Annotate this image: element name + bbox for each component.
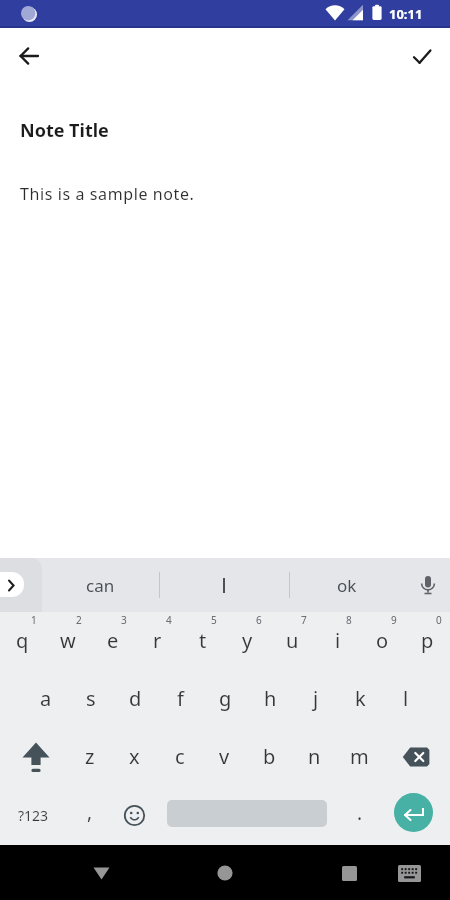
button[interactable]: m xyxy=(337,728,382,786)
button[interactable]: y xyxy=(225,612,270,670)
button[interactable] xyxy=(0,572,24,597)
staticText: a xyxy=(40,685,52,712)
staticText: j xyxy=(313,685,319,712)
staticText: 10:11 xyxy=(389,5,423,23)
staticText: This is a sample note. xyxy=(20,183,195,205)
staticText: 4 xyxy=(166,613,172,627)
staticText: 3 xyxy=(121,613,127,627)
button[interactable]: z xyxy=(67,728,112,786)
staticText: 7 xyxy=(301,613,307,627)
button[interactable] xyxy=(202,850,248,896)
button[interactable]: a xyxy=(23,670,68,728)
staticText: f xyxy=(177,685,184,712)
button[interactable]: j xyxy=(293,670,338,728)
staticText: r xyxy=(153,627,162,654)
staticText: x xyxy=(129,743,140,770)
staticText: q xyxy=(16,627,29,654)
button[interactable] xyxy=(112,786,157,845)
staticText: e xyxy=(107,627,119,654)
staticText: , xyxy=(87,799,93,825)
button[interactable]: l xyxy=(383,670,428,728)
button[interactable] xyxy=(382,728,449,786)
button[interactable]: c xyxy=(157,728,202,786)
button[interactable]: g xyxy=(203,670,248,728)
button[interactable] xyxy=(326,850,372,896)
button[interactable] xyxy=(400,34,444,78)
staticText: g xyxy=(219,685,232,712)
button[interactable] xyxy=(386,850,432,896)
button[interactable]: o xyxy=(360,612,405,670)
staticText: 2 xyxy=(76,613,82,627)
staticText: 9 xyxy=(391,613,397,627)
button[interactable]: i xyxy=(315,612,360,670)
button[interactable]: t xyxy=(180,612,225,670)
button[interactable]: r xyxy=(135,612,180,670)
staticText: m xyxy=(350,743,369,770)
staticText: ok xyxy=(337,574,357,597)
button[interactable]: s xyxy=(68,670,113,728)
button[interactable]: k xyxy=(338,670,383,728)
staticText: z xyxy=(85,743,95,770)
button[interactable] xyxy=(405,558,450,612)
staticText: t xyxy=(199,627,207,654)
button[interactable]: q xyxy=(0,612,45,670)
staticText: s xyxy=(86,685,96,712)
button[interactable]: , xyxy=(67,786,112,845)
button[interactable]: ?123 xyxy=(0,786,67,845)
button[interactable] xyxy=(186,558,262,612)
button[interactable]: b xyxy=(247,728,292,786)
button[interactable] xyxy=(0,728,67,786)
staticText: Note Title xyxy=(20,118,109,143)
staticText: h xyxy=(264,685,277,712)
staticText: 8 xyxy=(346,613,352,627)
button[interactable]: d xyxy=(113,670,158,728)
staticText: 5 xyxy=(211,613,217,627)
button[interactable] xyxy=(7,34,51,78)
staticText: w xyxy=(60,627,76,654)
button[interactable] xyxy=(382,786,450,845)
staticText: o xyxy=(376,627,389,654)
staticText: d xyxy=(129,685,142,712)
button[interactable]: v xyxy=(202,728,247,786)
staticText: l xyxy=(403,685,409,712)
button[interactable]: h xyxy=(248,670,293,728)
button[interactable]: f xyxy=(158,670,203,728)
staticText: b xyxy=(263,743,276,770)
button[interactable]: n xyxy=(292,728,337,786)
button[interactable] xyxy=(78,850,124,896)
staticText: . xyxy=(357,800,363,826)
staticText: v xyxy=(219,743,230,770)
staticText: can xyxy=(86,574,115,597)
button[interactable]: u xyxy=(270,612,315,670)
staticText: 6 xyxy=(256,613,262,627)
button[interactable]: x xyxy=(112,728,157,786)
staticText: c xyxy=(175,743,185,770)
button[interactable]: can xyxy=(58,558,142,612)
button[interactable]: . xyxy=(337,786,382,845)
button[interactable]: p xyxy=(405,612,450,670)
staticText: n xyxy=(308,743,321,770)
staticText: ?123 xyxy=(18,806,49,825)
staticText: u xyxy=(286,627,299,654)
staticText: i xyxy=(335,627,341,654)
button[interactable] xyxy=(157,786,337,845)
staticText: y xyxy=(242,627,253,654)
button[interactable]: ok xyxy=(311,558,383,612)
button[interactable]: w xyxy=(45,612,90,670)
staticText: p xyxy=(421,627,434,654)
staticText: k xyxy=(355,685,366,712)
staticText: 1 xyxy=(31,613,37,627)
button[interactable]: e xyxy=(90,612,135,670)
staticText: 0 xyxy=(436,613,442,627)
